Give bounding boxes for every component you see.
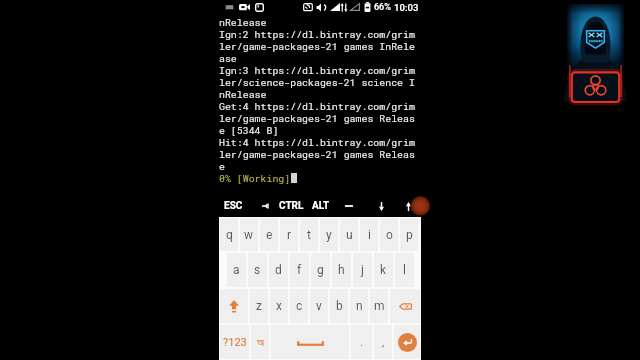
button[interactable]: n bbox=[350, 289, 368, 323]
staticText: q bbox=[226, 228, 233, 242]
button[interactable]: m bbox=[370, 289, 388, 323]
staticText: f bbox=[297, 263, 302, 277]
button[interactable]: q bbox=[220, 218, 238, 251]
button[interactable]: ESC bbox=[221, 195, 245, 217]
staticText: e bbox=[219, 160, 225, 172]
staticText: ?123 bbox=[223, 336, 247, 349]
staticText: k bbox=[380, 263, 387, 277]
staticText: ler/game-packages-21 games Releas bbox=[219, 148, 415, 160]
staticText: p bbox=[406, 228, 413, 242]
staticText: s bbox=[254, 263, 261, 277]
staticText: nRelease bbox=[219, 16, 267, 28]
button[interactable]: w bbox=[240, 218, 258, 251]
staticText: n bbox=[356, 299, 363, 313]
button[interactable]: y bbox=[320, 218, 338, 251]
staticText: 0% [Working] bbox=[219, 172, 291, 184]
button[interactable]: e bbox=[260, 218, 278, 251]
staticText: z bbox=[256, 299, 262, 313]
staticText: o bbox=[386, 228, 393, 242]
staticText: ESC bbox=[224, 200, 243, 212]
button[interactable]: i bbox=[360, 218, 378, 251]
button[interactable]: b bbox=[330, 289, 348, 323]
staticText: 66% bbox=[374, 2, 391, 13]
staticText: e [5344 B] bbox=[219, 124, 279, 136]
staticText: nRelease bbox=[219, 88, 267, 100]
staticText: l bbox=[403, 263, 406, 277]
staticText: Get:4 https://dl.bintray.com/grim bbox=[219, 100, 415, 112]
button[interactable]: ?123 bbox=[220, 325, 249, 359]
staticText: g bbox=[317, 263, 324, 277]
button[interactable]: c bbox=[290, 289, 308, 323]
staticText: v bbox=[316, 299, 322, 313]
button[interactable]: Enter bbox=[394, 325, 420, 359]
staticText: ler/science-packages-21 science I bbox=[219, 76, 415, 88]
button[interactable]: . bbox=[351, 325, 372, 359]
staticText: a bbox=[233, 263, 240, 277]
staticText: c bbox=[296, 299, 303, 313]
staticText: Hit:4 https://dl.bintray.com/grim bbox=[219, 136, 415, 148]
staticText: r bbox=[287, 228, 292, 242]
staticText: m bbox=[374, 299, 385, 313]
staticText: , bbox=[382, 336, 385, 349]
button[interactable]: Tab bbox=[254, 195, 276, 217]
button[interactable]: x bbox=[270, 289, 288, 323]
staticText: 10:03 bbox=[394, 2, 419, 13]
button[interactable]: v bbox=[310, 289, 328, 323]
button[interactable]: o bbox=[380, 218, 398, 251]
button[interactable]: p bbox=[400, 218, 418, 251]
button[interactable]: CTRL bbox=[278, 195, 304, 217]
button[interactable]: a bbox=[227, 253, 246, 287]
staticText: . bbox=[360, 336, 363, 349]
button[interactable]: d bbox=[269, 253, 288, 287]
staticText: j bbox=[361, 263, 364, 277]
button[interactable]: k bbox=[374, 253, 393, 287]
staticText: অ bbox=[257, 337, 264, 348]
button[interactable]: , bbox=[374, 325, 392, 359]
button[interactable]: Camera preview bbox=[567, 4, 624, 101]
button[interactable]: l bbox=[395, 253, 414, 287]
button[interactable]: u bbox=[340, 218, 358, 251]
button[interactable]: ALT bbox=[310, 195, 332, 217]
button[interactable]: g bbox=[311, 253, 330, 287]
button[interactable]: Arrow up bbox=[397, 195, 419, 217]
staticText: ler/game-packages-21 games InRele bbox=[219, 40, 415, 52]
button[interactable]: Shift bbox=[220, 289, 248, 323]
staticText: y bbox=[326, 228, 332, 242]
staticText: w bbox=[244, 228, 254, 242]
staticText: b bbox=[336, 299, 343, 313]
button[interactable]: j bbox=[353, 253, 372, 287]
staticText: ler/game-packages-21 games Releas bbox=[219, 112, 415, 124]
staticText: t bbox=[307, 228, 311, 242]
button[interactable]: অ bbox=[251, 325, 269, 359]
button[interactable]: Backspace bbox=[390, 289, 420, 323]
button[interactable]: r bbox=[280, 218, 298, 251]
staticText: CTRL bbox=[279, 200, 304, 212]
staticText: e bbox=[266, 228, 273, 242]
button[interactable]: Arrow down bbox=[370, 195, 392, 217]
staticText: u bbox=[346, 228, 353, 242]
button[interactable]: h bbox=[332, 253, 351, 287]
button[interactable]: z bbox=[250, 289, 268, 323]
button[interactable]: s bbox=[248, 253, 267, 287]
staticText: Ign:3 https://dl.bintray.com/grim bbox=[219, 64, 415, 76]
button[interactable]: Minus bbox=[338, 195, 360, 217]
staticText: h bbox=[338, 263, 345, 277]
staticText: d bbox=[275, 263, 282, 277]
button[interactable]: Stop recording bbox=[411, 196, 423, 215]
button[interactable]: Space bbox=[271, 325, 349, 359]
button[interactable]: t bbox=[300, 218, 318, 251]
staticText: i bbox=[368, 228, 371, 242]
staticText: ALT bbox=[312, 200, 330, 212]
staticText: Ign:2 https://dl.bintray.com/grim bbox=[219, 28, 415, 40]
staticText: ase bbox=[219, 52, 237, 64]
button[interactable]: f bbox=[290, 253, 309, 287]
staticText: x bbox=[276, 299, 282, 313]
